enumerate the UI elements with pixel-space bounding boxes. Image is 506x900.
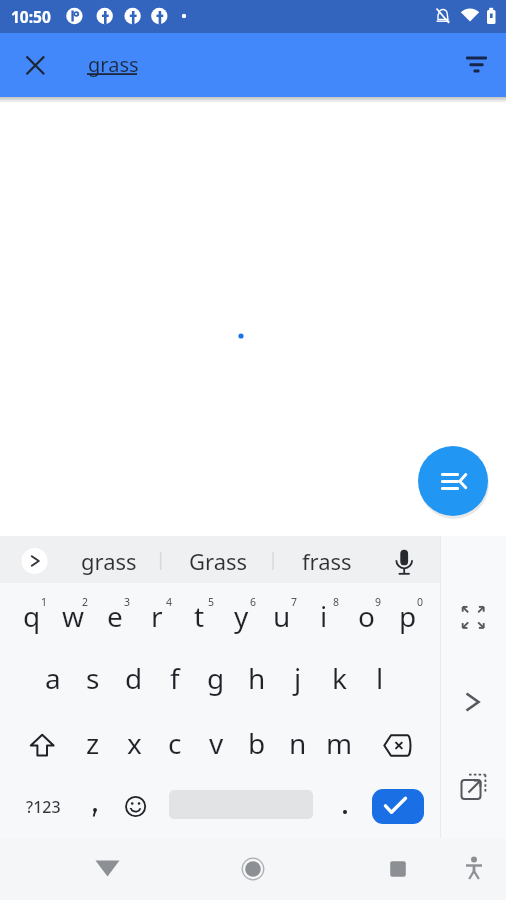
button[interactable] <box>77 786 113 828</box>
button[interactable] <box>19 724 65 766</box>
button[interactable] <box>84 845 132 893</box>
staticText: q <box>23 597 41 635</box>
staticText: Grass <box>189 546 248 576</box>
staticText: 1 <box>41 595 48 609</box>
button[interactable]: y <box>221 594 261 638</box>
staticText: 8 <box>333 595 340 609</box>
button[interactable]: t <box>179 594 219 638</box>
staticText: w <box>62 597 85 635</box>
staticText: b <box>248 724 266 762</box>
button[interactable]: m <box>319 721 359 765</box>
staticText: x <box>127 724 142 762</box>
button[interactable] <box>418 446 488 516</box>
button[interactable] <box>449 679 495 725</box>
staticText: j <box>294 659 302 697</box>
button[interactable]: grass <box>61 538 157 584</box>
staticText: ?123 <box>26 796 61 818</box>
staticText: p <box>399 597 417 635</box>
staticText: s <box>86 659 100 697</box>
staticText: 6 <box>250 595 257 609</box>
staticText: y <box>234 597 249 635</box>
staticText: h <box>248 659 266 697</box>
button[interactable] <box>116 786 156 828</box>
button[interactable] <box>456 44 496 84</box>
button[interactable]: l <box>360 656 400 700</box>
staticText: i <box>320 597 328 635</box>
button[interactable]: s <box>73 656 113 700</box>
button[interactable]: grass <box>64 41 444 89</box>
staticText: 3 <box>124 595 131 609</box>
staticText: grass <box>81 546 137 576</box>
button[interactable]: u <box>262 594 302 638</box>
button[interactable]: p <box>388 594 428 638</box>
button[interactable]: b <box>237 721 277 765</box>
button[interactable]: h <box>237 656 277 700</box>
staticText: a <box>45 659 61 697</box>
button[interactable]: e <box>95 594 135 638</box>
button[interactable]: a <box>33 656 73 700</box>
staticText: g <box>207 659 225 697</box>
staticText: 9 <box>375 595 382 609</box>
button[interactable] <box>385 538 423 584</box>
button[interactable]: n <box>278 721 318 765</box>
staticText: l <box>376 659 384 697</box>
button[interactable] <box>449 767 495 813</box>
button[interactable]: f <box>155 656 195 700</box>
staticText: c <box>168 724 182 762</box>
staticText: grass <box>88 51 139 78</box>
button[interactable] <box>327 786 363 828</box>
button[interactable] <box>229 845 277 893</box>
button[interactable]: ?123 <box>16 786 70 828</box>
staticText: u <box>273 597 291 635</box>
staticText: z <box>86 724 100 762</box>
staticText: 7 <box>291 595 298 609</box>
staticText: 5 <box>208 595 215 609</box>
staticText: frass <box>302 546 352 576</box>
staticText: e <box>107 597 123 635</box>
staticText: t <box>194 597 205 635</box>
staticText: v <box>209 724 224 762</box>
button[interactable] <box>450 594 496 640</box>
staticText: n <box>289 724 307 762</box>
staticText: f <box>170 659 180 697</box>
button[interactable]: frass <box>283 538 371 584</box>
staticText: 2 <box>82 595 89 609</box>
button[interactable]: j <box>278 656 318 700</box>
button[interactable]: w <box>53 594 93 638</box>
button[interactable] <box>18 544 52 578</box>
button[interactable]: o <box>346 594 386 638</box>
staticText: o <box>358 597 375 635</box>
button[interactable]: c <box>155 721 195 765</box>
button[interactable] <box>374 845 422 893</box>
staticText: 0 <box>417 595 424 609</box>
button[interactable]: g <box>196 656 236 700</box>
staticText: d <box>125 659 143 697</box>
button[interactable]: d <box>114 656 154 700</box>
staticText: k <box>332 659 347 697</box>
button[interactable]: v <box>196 721 236 765</box>
button[interactable]: k <box>319 656 359 700</box>
button[interactable]: Grass <box>170 538 266 584</box>
staticText: 4 <box>166 595 173 609</box>
button[interactable] <box>372 789 424 824</box>
button[interactable]: q <box>12 594 52 638</box>
staticText: 10:50 <box>11 6 51 27</box>
button[interactable]: i <box>304 594 344 638</box>
button[interactable]: z <box>73 721 113 765</box>
staticText: m <box>326 724 353 762</box>
staticText: r <box>151 597 163 635</box>
button[interactable] <box>375 725 421 767</box>
button[interactable]: r <box>137 594 177 638</box>
button[interactable] <box>450 845 498 893</box>
button[interactable]: x <box>114 721 154 765</box>
button[interactable] <box>15 45 55 85</box>
